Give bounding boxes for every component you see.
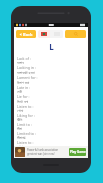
button[interactable]: Lacking in : (17, 65, 86, 75)
staticText: Lacking in : (17, 65, 36, 70)
staticText: Limited to : (17, 131, 36, 136)
button[interactable]: Late in : (17, 85, 86, 94)
button[interactable]: Listen to : (17, 140, 86, 146)
staticText: শোনা (17, 145, 24, 146)
staticText: Listen to : (17, 104, 34, 109)
staticText: প্রীতি (17, 118, 23, 122)
staticText: Lie for : (17, 94, 30, 99)
button[interactable]: Lack of : (17, 56, 86, 65)
staticText: দেরী (17, 90, 22, 94)
button[interactable]: Play Game (69, 148, 86, 156)
button[interactable]: Powerful tank association (14, 146, 88, 158)
button[interactable]: Switch language (38, 30, 63, 38)
staticText: Limit to : (17, 122, 32, 127)
staticText: L (49, 41, 54, 52)
button[interactable]: Lie for : (17, 94, 86, 104)
staticText: Liking for : (17, 113, 35, 118)
button[interactable]: Search (65, 30, 86, 38)
staticText: Back (23, 32, 33, 37)
button[interactable]: Limit to : (17, 122, 86, 131)
button[interactable]: Listen to : (17, 104, 86, 113)
staticText: Late in : (17, 85, 31, 90)
button[interactable]: Limited to : (17, 131, 86, 140)
staticText: শোনা (17, 109, 24, 113)
staticText: বিলাপ করা (17, 80, 30, 85)
staticText: Listen to : (17, 140, 34, 145)
button[interactable]: Back (16, 30, 36, 38)
staticText: greatest war. Join now! (27, 152, 55, 156)
staticText: অভাবগ্রস্ত হওয়া (17, 70, 35, 75)
staticText: মিথ্যা বলা (17, 99, 29, 104)
button[interactable]: Liking for : (17, 113, 86, 122)
staticText: অভাব (17, 61, 24, 65)
staticText: সীমা (17, 127, 23, 131)
button[interactable]: Lament for : (17, 75, 86, 85)
staticText: Powerful tank association (27, 148, 59, 152)
staticText: Lack of : (17, 56, 31, 61)
staticText: Play Game (70, 150, 86, 154)
staticText: Lament for : (17, 75, 38, 80)
staticText: সীমাবদ্ধ (17, 136, 26, 140)
